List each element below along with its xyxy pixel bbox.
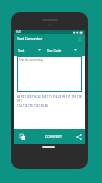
button[interactable]: Share — [72, 129, 85, 144]
staticText: 84 101 120 116 32 102 111 114 32 99 111 … — [17, 95, 82, 103]
staticText: 9:41 — [16, 30, 22, 34]
button[interactable]: Text — [18, 44, 41, 56]
button[interactable]: Text for converting — [17, 56, 82, 92]
staticText: 114 116 105 110 103 46 — [17, 104, 48, 108]
button[interactable]: Dec Code — [47, 44, 77, 56]
staticText: CONVERT — [45, 134, 63, 139]
button[interactable]: Copy — [14, 129, 30, 144]
staticText: Dec Code — [47, 49, 62, 53]
staticText: Text Convertor — [17, 36, 43, 41]
staticText: Text — [18, 49, 25, 53]
button[interactable]: CONVERT — [30, 129, 72, 144]
button[interactable]: More options — [76, 35, 84, 43]
staticText: Text for converting — [19, 58, 43, 62]
